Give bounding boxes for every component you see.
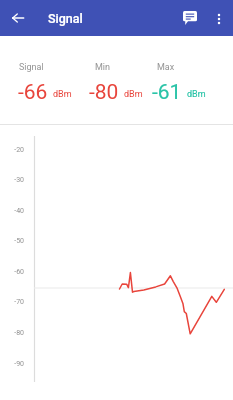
staticText: -80 bbox=[89, 80, 119, 105]
button[interactable]: Back bbox=[0, 0, 36, 36]
staticText: dBm bbox=[187, 89, 206, 100]
staticText: -50 bbox=[8, 237, 24, 245]
staticText: -40 bbox=[8, 207, 24, 215]
button[interactable]: More options bbox=[205, 0, 233, 36]
staticText: -66 bbox=[18, 80, 48, 105]
staticText: -70 bbox=[8, 298, 24, 306]
staticText: -20 bbox=[8, 146, 24, 154]
staticText: -80 bbox=[8, 329, 24, 337]
staticText: dBm bbox=[53, 89, 72, 100]
staticText: -30 bbox=[8, 176, 24, 184]
staticText: -61 bbox=[152, 80, 182, 105]
staticText: Signal bbox=[48, 11, 83, 26]
staticText: dBm bbox=[124, 89, 143, 100]
staticText: Signal bbox=[19, 62, 44, 73]
staticText: -90 bbox=[8, 360, 24, 368]
staticText: Min bbox=[95, 62, 111, 73]
button[interactable]: Messages bbox=[175, 0, 205, 36]
staticText: -60 bbox=[8, 268, 24, 276]
staticText: Max bbox=[157, 62, 175, 73]
